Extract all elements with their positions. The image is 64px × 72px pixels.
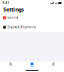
button[interactable]: General (0, 13, 64, 22)
button[interactable]: Search (43, 61, 64, 69)
button[interactable]: Home (21, 61, 43, 69)
button[interactable]: Display & Brightness (0, 22, 64, 32)
staticText: Search (50, 66, 56, 68)
staticText: 9:41 (3, 1, 10, 5)
staticText: Home (30, 66, 34, 68)
staticText: General (7, 16, 18, 19)
staticText: Display & Brightness (7, 25, 35, 29)
staticText: Today (8, 66, 13, 68)
button[interactable]: Today (0, 61, 21, 69)
staticText: Settings (3, 6, 24, 13)
